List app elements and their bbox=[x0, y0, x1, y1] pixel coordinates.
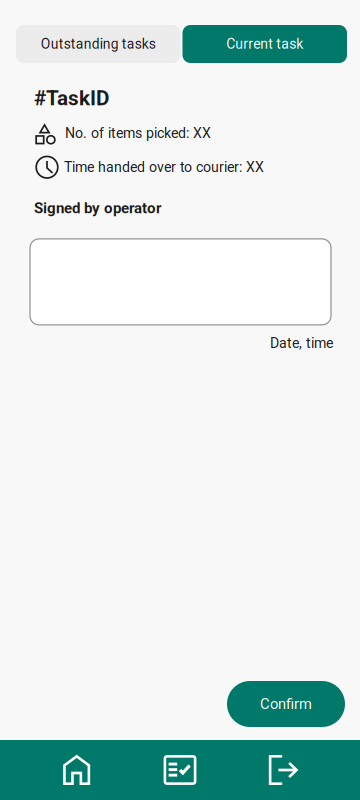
button[interactable]: Current task bbox=[182, 25, 347, 63]
staticText: Outstanding tasks bbox=[41, 36, 156, 52]
staticText: Current task bbox=[226, 36, 303, 52]
button[interactable]: Confirm bbox=[227, 681, 345, 727]
staticText: Confirm bbox=[260, 695, 312, 713]
button[interactable]: Outstanding tasks bbox=[16, 25, 180, 63]
staticText: Date, time bbox=[270, 335, 333, 351]
staticText: Signed by operator bbox=[34, 199, 162, 217]
button[interactable]: Signature area bbox=[30, 239, 331, 325]
button[interactable]: Home bbox=[25, 740, 128, 800]
staticText: No. of items picked: XX bbox=[65, 125, 211, 141]
button[interactable]: Tasks bbox=[128, 740, 232, 800]
staticText: #TaskID bbox=[34, 86, 109, 110]
staticText: Time handed over to courier: XX bbox=[64, 159, 264, 175]
button[interactable]: Log out bbox=[232, 740, 335, 800]
